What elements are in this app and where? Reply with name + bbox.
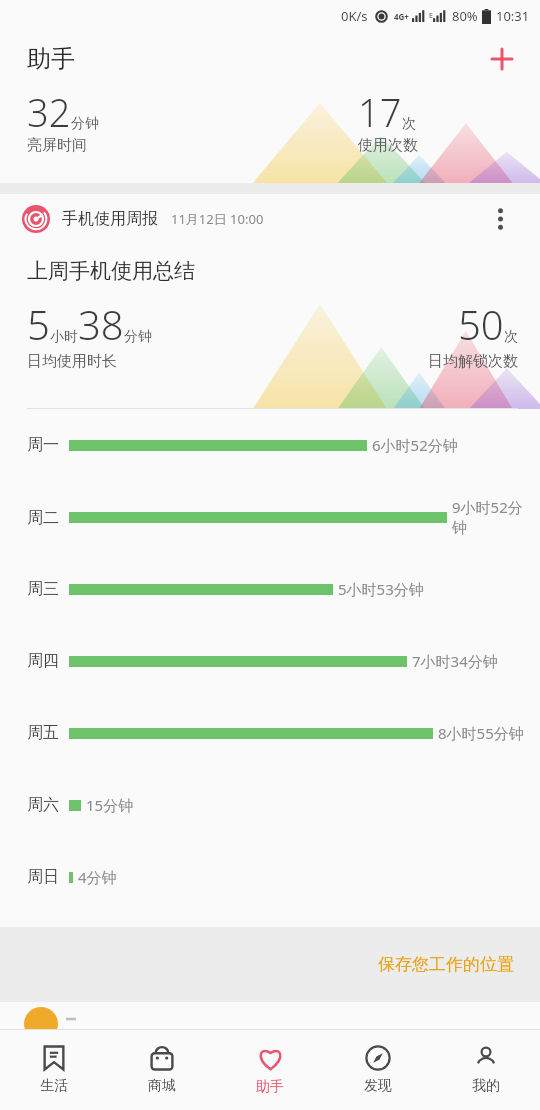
button[interactable]: 周三 xyxy=(0,553,540,625)
staticText: 生活 xyxy=(40,1077,68,1095)
staticText: 38 xyxy=(78,297,124,351)
staticText: 5小时53分钟 xyxy=(338,579,424,599)
button[interactable]: 我的 xyxy=(432,1030,540,1110)
staticText: 周日 xyxy=(27,867,59,887)
staticText: 周六 xyxy=(27,795,59,815)
staticText: 亮屏时间 xyxy=(27,136,87,155)
staticText: 商城 xyxy=(148,1077,176,1095)
staticText: 4G+ xyxy=(394,11,409,22)
staticText: 助手 xyxy=(27,44,75,74)
staticText: 保存您工作的位置 xyxy=(378,954,514,975)
button[interactable]: 助手 xyxy=(216,1030,324,1110)
staticText: 10:31 xyxy=(496,7,530,25)
staticText: 周三 xyxy=(27,579,59,599)
staticText: 32 xyxy=(27,86,71,138)
button[interactable]: Add xyxy=(480,37,524,81)
staticText: 次 xyxy=(504,328,518,346)
staticText: 使用次数 xyxy=(358,136,418,155)
staticText: 发现 xyxy=(364,1077,392,1095)
staticText: 分钟 xyxy=(71,115,99,133)
staticText: 分钟 xyxy=(124,328,152,346)
staticText: 6小时52分钟 xyxy=(372,435,458,455)
staticText: 周四 xyxy=(27,651,59,671)
staticText: 助手 xyxy=(256,1078,284,1096)
button[interactable]: 周六 xyxy=(0,769,540,841)
staticText: 日均使用时长 xyxy=(27,352,117,371)
button[interactable]: 周四 xyxy=(0,625,540,697)
button[interactable]: 手机使用周报 xyxy=(0,194,540,927)
staticText: E xyxy=(429,11,433,21)
staticText: 17 xyxy=(358,86,402,138)
staticText: 7小时34分钟 xyxy=(412,651,498,671)
staticText: 50 xyxy=(458,297,504,351)
staticText: 周五 xyxy=(27,723,59,743)
staticText: 我的 xyxy=(472,1077,500,1095)
staticText: 11月12日 10:00 xyxy=(171,210,264,228)
button[interactable]: 周五 xyxy=(0,697,540,769)
staticText: 8小时55分钟 xyxy=(438,723,524,743)
button[interactable]: 商城 xyxy=(108,1030,216,1110)
button[interactable]: 32 xyxy=(0,86,540,183)
staticText: 4分钟 xyxy=(78,867,117,887)
button[interactable]: 发现 xyxy=(324,1030,432,1110)
button[interactable]: 周日 xyxy=(0,841,540,913)
button[interactable]: More options xyxy=(482,201,518,237)
staticText: 小时 xyxy=(50,328,78,346)
button[interactable]: 生活 xyxy=(0,1030,108,1110)
staticText: 周二 xyxy=(27,508,59,528)
staticText: 80% xyxy=(452,7,478,25)
staticText: 0K/s xyxy=(341,7,368,25)
button[interactable]: 周一 xyxy=(0,409,540,481)
staticText: 次 xyxy=(402,115,416,133)
staticText: 9小时52分钟 xyxy=(452,497,530,538)
staticText: 手机使用周报 xyxy=(62,209,158,229)
button[interactable]: 周二 xyxy=(0,481,540,553)
staticText: 周一 xyxy=(27,435,59,455)
staticText: 15分钟 xyxy=(86,795,134,815)
staticText: 上周手机使用总结 xyxy=(27,258,195,284)
button[interactable]: 保存您工作的位置 xyxy=(0,927,540,1002)
staticText: 5 xyxy=(27,297,50,351)
staticText: 日均解锁次数 xyxy=(428,352,518,371)
